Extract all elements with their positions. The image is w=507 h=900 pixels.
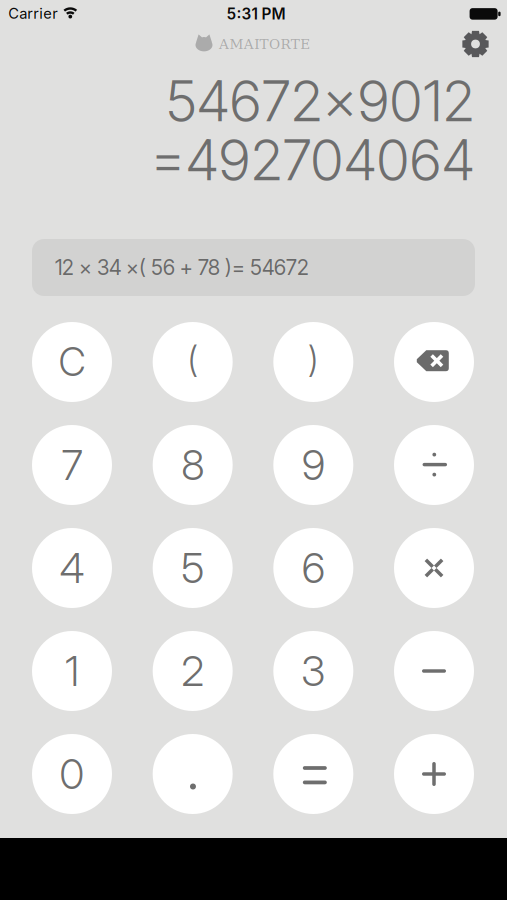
button[interactable]: 1 <box>32 631 112 711</box>
staticText: 8 <box>181 440 204 490</box>
button[interactable]: 3 <box>273 631 353 711</box>
button[interactable]: Delete <box>394 322 474 402</box>
button[interactable]: Divide <box>394 425 474 505</box>
staticText: 54672×9012 <box>165 67 474 135</box>
staticText: =492704064 <box>150 126 474 194</box>
button[interactable]: Multiply <box>394 528 474 608</box>
button[interactable]: Plus <box>394 734 474 814</box>
staticText: 5:31 <box>226 4 257 23</box>
button[interactable]: 6 <box>273 528 353 608</box>
button[interactable]: Settings <box>461 30 489 58</box>
button[interactable]: 5 <box>153 528 233 608</box>
staticText: 4 <box>59 543 84 593</box>
staticText: 1 <box>65 646 79 696</box>
button[interactable]: 0 <box>32 734 112 814</box>
button[interactable]: 9 <box>273 425 353 505</box>
staticText: 2 <box>181 646 204 696</box>
staticText: PM <box>261 4 285 23</box>
staticText: 12 × 34 ×( 56 + 78 )= 54672 <box>55 255 309 280</box>
button[interactable]: 4 <box>32 528 112 608</box>
staticText: 6 <box>302 543 325 593</box>
staticText: Carrier <box>8 4 58 22</box>
button[interactable]: C <box>32 322 112 402</box>
staticText: 9 <box>302 440 325 490</box>
button[interactable]: Equals <box>273 734 353 814</box>
staticText: 3 <box>301 646 325 696</box>
staticText: C <box>58 339 85 385</box>
staticText: 5 <box>181 543 204 593</box>
button[interactable]: 8 <box>153 425 233 505</box>
staticText: ) <box>308 337 319 381</box>
button[interactable]: ( <box>153 322 233 402</box>
button[interactable]: ) <box>273 322 353 402</box>
staticText: 0 <box>59 749 84 799</box>
staticText: 7 <box>61 440 82 490</box>
button[interactable]: Decimal point <box>153 734 233 814</box>
button[interactable]: 2 <box>153 631 233 711</box>
button[interactable]: Minus <box>394 631 474 711</box>
staticText: AMAITORTE <box>219 36 310 52</box>
staticText: ( <box>187 337 198 381</box>
button[interactable]: 7 <box>32 425 112 505</box>
